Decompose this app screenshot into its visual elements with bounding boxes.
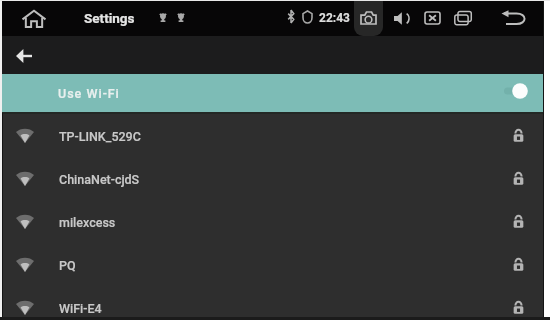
button[interactable]: ChinaNet-cjdS	[0, 157, 550, 200]
button[interactable]: TP-LINK_529C	[0, 114, 550, 157]
button[interactable]: Back	[498, 0, 528, 36]
staticText: PQ	[59, 258, 76, 273]
button[interactable]: Navigate up	[9, 36, 39, 75]
staticText: 22:43	[319, 11, 350, 25]
staticText: milexcess	[59, 215, 116, 230]
staticText: Settings	[84, 10, 135, 26]
button[interactable]: PQ	[0, 243, 550, 286]
staticText: WiFi-E4	[59, 301, 102, 316]
button[interactable]: WiFi-E4	[0, 286, 550, 320]
button[interactable]: Use Wi-Fi	[0, 74, 550, 112]
staticText: TP-LINK_529C	[59, 129, 141, 144]
button[interactable]: Volume	[389, 0, 413, 36]
button[interactable]: Screenshot	[354, 0, 383, 36]
button[interactable]: Close	[420, 0, 444, 36]
button[interactable]: milexcess	[0, 200, 550, 243]
staticText: Use Wi-Fi	[58, 86, 120, 101]
button[interactable]: Wi-Fi on/off	[492, 79, 530, 103]
button[interactable]: Home	[18, 0, 50, 36]
staticText: ChinaNet-cjdS	[59, 172, 140, 187]
button[interactable]: Recent apps	[451, 0, 475, 36]
